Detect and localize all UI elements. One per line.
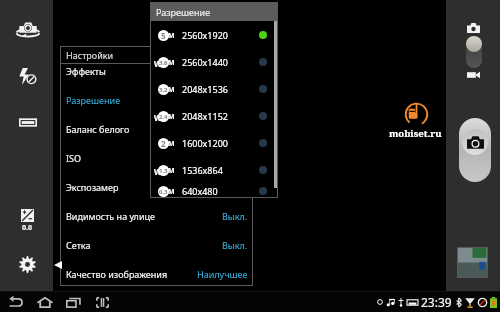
button[interactable]: Home bbox=[35, 294, 54, 310]
staticText: 23:39 bbox=[421, 294, 452, 310]
staticText: 2048x1536 bbox=[182, 83, 228, 95]
staticText: M bbox=[168, 85, 175, 95]
staticText: M bbox=[168, 187, 175, 197]
button[interactable]: Exposure compensation bbox=[14, 209, 40, 233]
staticText: Баланс белого bbox=[66, 123, 130, 135]
button[interactable]: Settings bbox=[15, 252, 39, 276]
button[interactable]: Switch camera bbox=[14, 18, 42, 46]
button[interactable]: Баланс белого bbox=[60, 114, 253, 143]
staticText: 5 bbox=[161, 30, 166, 41]
staticText: mobiset.ru bbox=[389, 127, 442, 140]
staticText: Сетка bbox=[66, 239, 91, 251]
staticText: ISO bbox=[66, 152, 82, 164]
button[interactable]: Разрешение bbox=[60, 85, 253, 114]
staticText: 2560x1920 bbox=[182, 29, 228, 41]
button[interactable]: 0.3 bbox=[150, 183, 278, 198]
button[interactable]: Screenshot bbox=[94, 294, 111, 310]
staticText: 0.3 bbox=[159, 188, 168, 196]
button[interactable]: W bbox=[150, 102, 278, 129]
button[interactable]: 3.2 bbox=[150, 75, 278, 102]
button[interactable]: ISO bbox=[60, 143, 253, 172]
staticText: 0.0 bbox=[22, 223, 32, 233]
button[interactable]: Видимость на улице bbox=[60, 201, 253, 230]
staticText: 640x480 bbox=[182, 185, 218, 197]
button[interactable]: Качество изображения bbox=[60, 259, 253, 288]
staticText: 2560x1440 bbox=[182, 56, 228, 68]
button[interactable]: Shutter bbox=[459, 118, 491, 182]
staticText: 2 bbox=[161, 138, 166, 149]
staticText: Настройки bbox=[66, 49, 114, 61]
staticText: M bbox=[168, 112, 175, 122]
button[interactable]: Gallery bbox=[457, 247, 488, 278]
button[interactable]: Экспозамер bbox=[60, 172, 253, 201]
button[interactable]: Recents bbox=[64, 294, 83, 310]
button[interactable]: Photo mode bbox=[467, 23, 480, 33]
button[interactable]: Эффекты bbox=[60, 56, 253, 85]
staticText: Выкл. bbox=[222, 210, 248, 222]
button[interactable]: Сетка bbox=[60, 230, 253, 259]
staticText: Видимость на улице bbox=[66, 210, 155, 222]
staticText: W bbox=[154, 112, 162, 123]
staticText: M bbox=[168, 166, 175, 176]
staticText: Экспозамер bbox=[66, 181, 119, 193]
button[interactable]: Flash off bbox=[14, 62, 42, 90]
staticText: 1.3 bbox=[159, 167, 168, 175]
staticText: Эффекты bbox=[66, 65, 106, 77]
button[interactable]: W bbox=[150, 48, 278, 75]
button[interactable]: Back bbox=[6, 294, 25, 310]
staticText: Разрешение bbox=[66, 94, 121, 106]
staticText: 3.2 bbox=[159, 86, 168, 94]
staticText: M bbox=[168, 139, 175, 149]
button[interactable]: Video mode bbox=[467, 71, 480, 79]
staticText: M bbox=[168, 31, 175, 41]
staticText: Наилучшее bbox=[197, 268, 248, 280]
staticText: M bbox=[168, 58, 175, 68]
staticText: Качество изображения bbox=[66, 268, 168, 280]
button[interactable]: Shooting mode bbox=[14, 105, 42, 133]
staticText: 2048x1152 bbox=[182, 110, 228, 122]
staticText: 1536x864 bbox=[182, 164, 223, 176]
staticText: Выкл. bbox=[222, 239, 248, 251]
button[interactable]: 2 bbox=[150, 129, 278, 156]
button[interactable]: 5 bbox=[150, 21, 278, 48]
staticText: 1600x1200 bbox=[182, 137, 228, 149]
staticText: Разрешение bbox=[156, 6, 211, 18]
staticText: W bbox=[154, 58, 162, 69]
staticText: 2.4 bbox=[159, 113, 168, 121]
staticText: W bbox=[154, 166, 162, 177]
button[interactable]: W bbox=[150, 156, 278, 183]
staticText: 3.6 bbox=[159, 59, 168, 67]
button[interactable] bbox=[466, 36, 482, 68]
